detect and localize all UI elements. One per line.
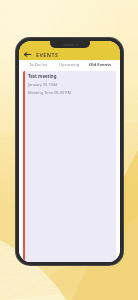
button[interactable]: Back xyxy=(23,50,32,59)
staticText: Old Events xyxy=(89,62,112,68)
button[interactable]: Upcoming xyxy=(54,60,84,69)
button[interactable]: To-Do list xyxy=(23,60,54,69)
staticText: January 30 1944 xyxy=(28,82,58,87)
staticText: Test meeting xyxy=(28,73,57,79)
staticText: To-Do list xyxy=(29,62,48,68)
staticText: Meeting Time 05:00 PM xyxy=(28,90,71,95)
staticText: EVENTS xyxy=(36,51,59,58)
staticText: Upcoming xyxy=(59,62,80,68)
button[interactable]: Test meeting xyxy=(23,71,116,262)
button[interactable]: Old Events xyxy=(84,60,116,69)
